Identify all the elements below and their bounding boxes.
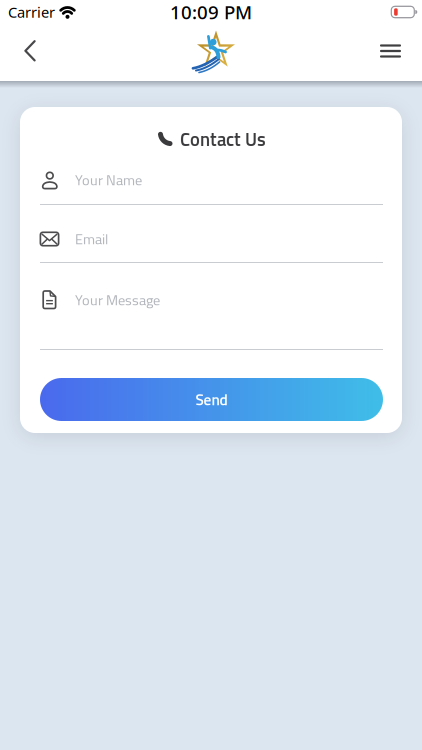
button[interactable] [380, 45, 422, 59]
button[interactable]: Send [40, 378, 383, 421]
button[interactable]: Email [40, 228, 383, 263]
staticText: Your Name [75, 169, 142, 191]
button[interactable] [0, 41, 36, 63]
staticText: Your Message [75, 289, 160, 311]
button[interactable]: Your Message [40, 289, 383, 350]
staticText: Send [195, 388, 227, 411]
staticText: Contact Us [180, 125, 266, 153]
staticText: Carrier [8, 2, 55, 22]
button[interactable]: Your Name [40, 169, 383, 205]
staticText: Email [75, 228, 108, 250]
staticText: 10:09 PM [170, 0, 252, 24]
